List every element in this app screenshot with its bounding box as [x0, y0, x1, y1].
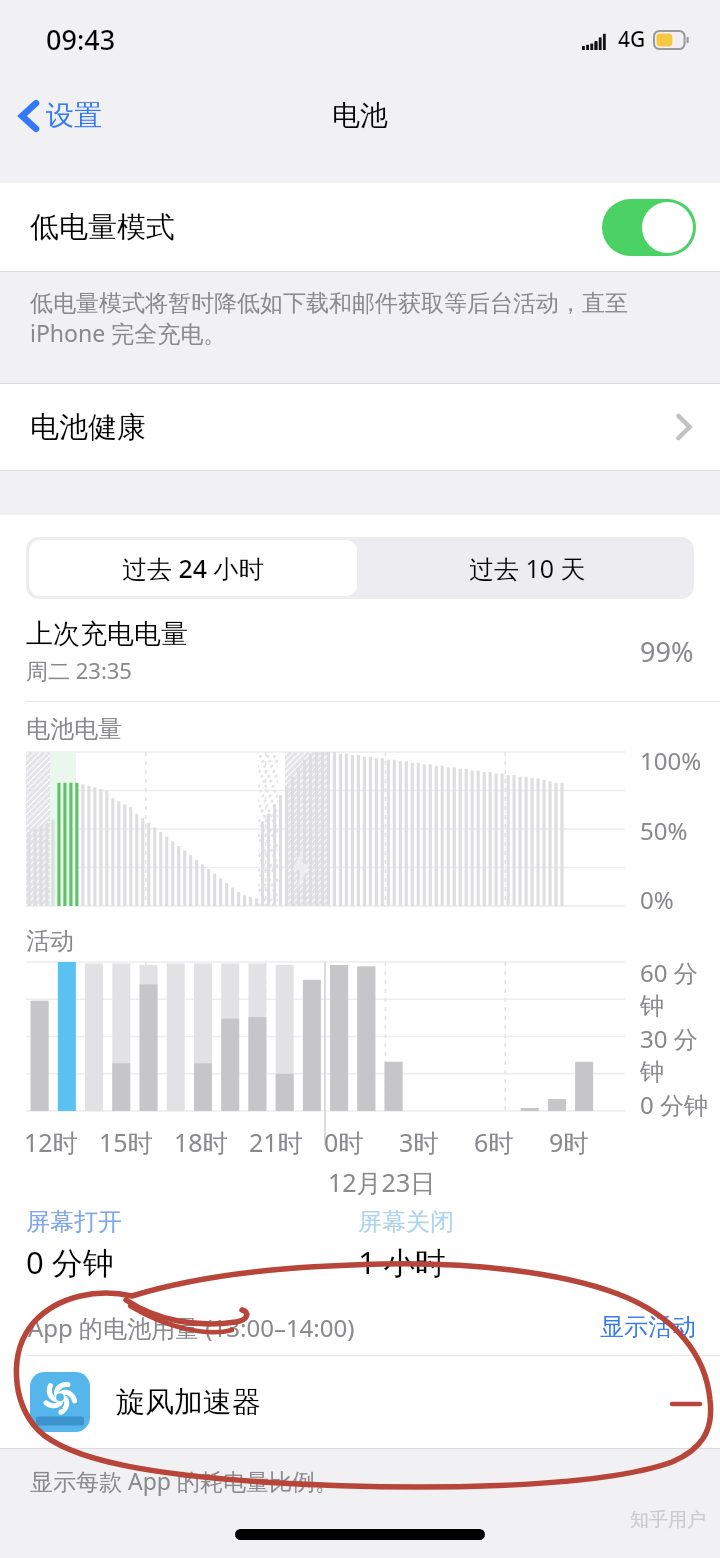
staticText: 15时	[99, 1125, 153, 1159]
staticText: 9时	[549, 1125, 589, 1159]
button[interactable]: 电池健康	[0, 384, 720, 470]
button[interactable]: 过去 24 小时	[29, 540, 357, 596]
staticText: 0 分钟	[640, 1088, 708, 1121]
staticText: 低电量模式将暂时降低如下载和邮件获取等后台活动，直至 iPhone 完全充电。	[30, 286, 702, 349]
staticText: 30 分钟	[640, 1022, 720, 1087]
staticText: 100%	[640, 744, 702, 777]
staticText: 09:43	[46, 21, 116, 58]
staticText: 电池	[332, 98, 388, 133]
staticText: 电池健康	[30, 409, 146, 446]
button[interactable]: 低电量模式	[0, 183, 720, 271]
staticText: 0%	[640, 883, 674, 916]
button[interactable]	[602, 199, 696, 256]
staticText: 1 小时	[358, 1241, 446, 1283]
staticText: 显示每款 App 的耗电量比例。	[30, 1465, 338, 1496]
staticText: 显示活动	[600, 1312, 696, 1342]
staticText: 旋风加速器	[116, 1384, 261, 1421]
button[interactable]: 设置	[18, 98, 102, 133]
staticText: 18时	[174, 1125, 228, 1159]
staticText: 50%	[640, 814, 688, 847]
staticText: 4G	[618, 25, 646, 54]
button[interactable]: 过去 10 天	[360, 537, 694, 599]
staticText: 0时	[324, 1125, 364, 1159]
staticText: 3时	[399, 1125, 439, 1159]
staticText: 低电量模式	[30, 209, 175, 246]
button[interactable]: 旋风加速器	[0, 1356, 720, 1448]
staticText: 21时	[249, 1125, 303, 1159]
staticText: 99%	[640, 633, 694, 670]
staticText: 设置	[46, 98, 102, 133]
staticText: 12月23日	[328, 1165, 436, 1199]
staticText: 过去 24 小时	[122, 551, 264, 585]
staticText: 12时	[24, 1125, 78, 1159]
staticText: 周二 23:35	[26, 655, 132, 685]
staticText: 电池电量	[26, 714, 122, 744]
staticText: 屏幕打开	[26, 1207, 122, 1237]
staticText: 过去 10 天	[469, 551, 586, 585]
staticText: 知乎用户	[630, 1508, 706, 1532]
staticText: 6时	[474, 1125, 514, 1159]
button[interactable]: 显示活动	[600, 1312, 696, 1342]
staticText: 屏幕关闭	[358, 1207, 454, 1237]
staticText: 0 分钟	[26, 1241, 114, 1283]
staticText: 活动	[26, 926, 74, 956]
staticText: App 的电池用量 (13:00–14:00)	[28, 1311, 355, 1344]
staticText: 60 分钟	[640, 956, 720, 1021]
staticText: 上次充电电量	[26, 617, 188, 651]
